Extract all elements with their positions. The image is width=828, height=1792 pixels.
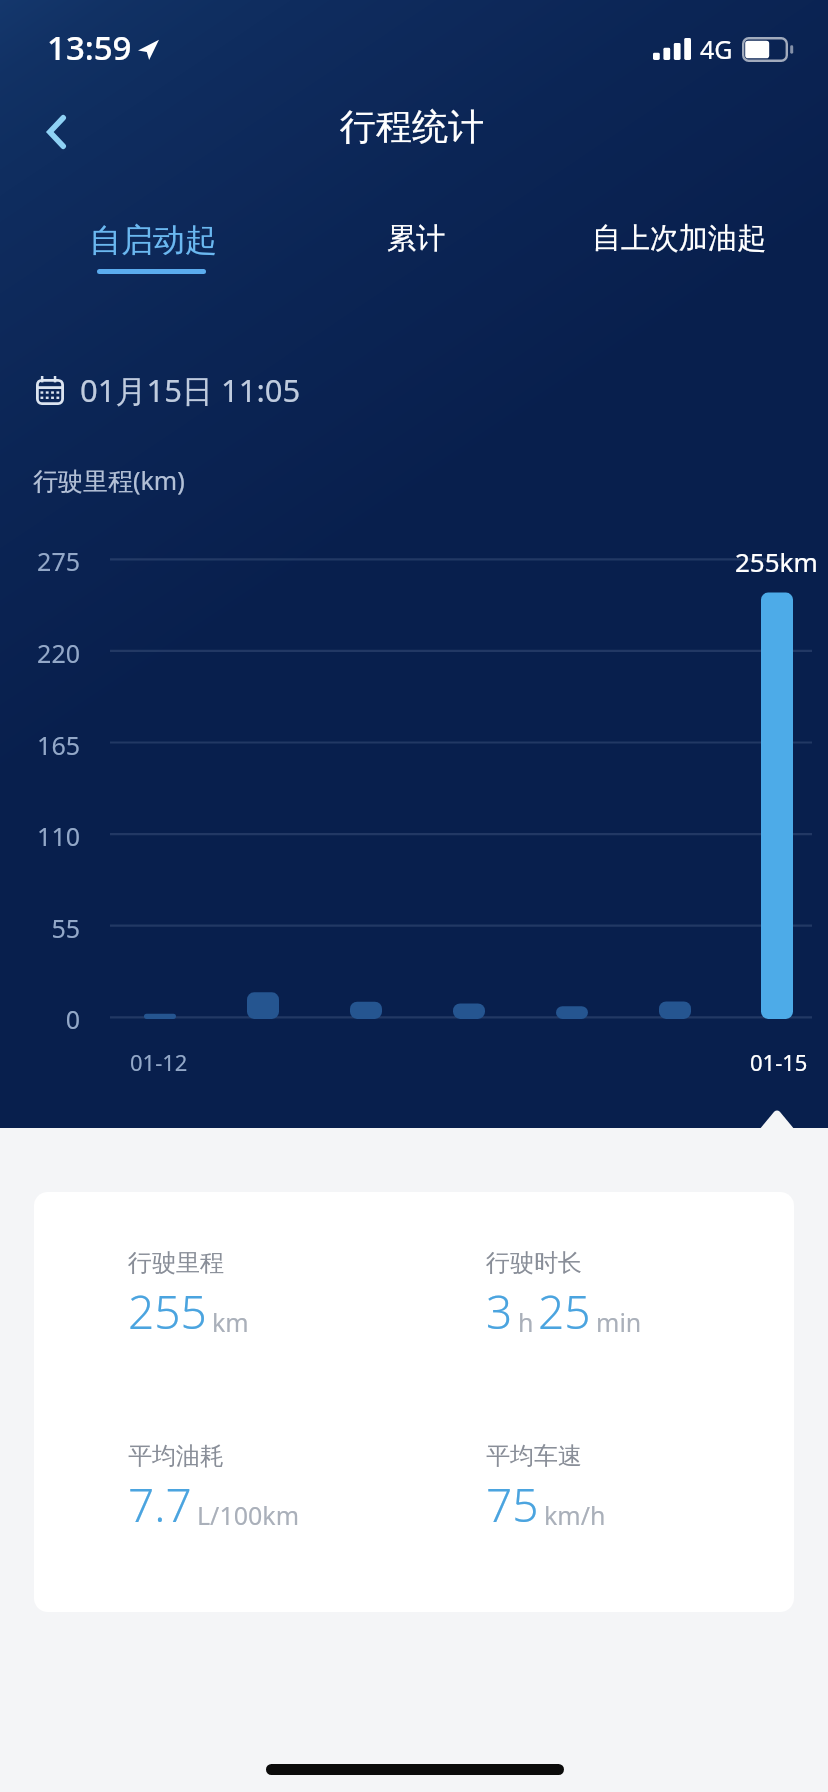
staticText: 行程统计 — [340, 104, 484, 149]
staticText: km/h — [544, 1498, 606, 1532]
staticText: 55 — [51, 911, 80, 945]
staticText: km — [212, 1305, 249, 1339]
staticText: 7.7 — [128, 1473, 192, 1536]
staticText: 平均车速 — [486, 1441, 582, 1471]
staticText: 255km — [735, 544, 818, 579]
button[interactable]: 累计 — [284, 220, 547, 300]
staticText: 行驶里程 — [128, 1248, 224, 1278]
staticText: 01-15 — [750, 1047, 808, 1077]
other: Battery — [742, 37, 794, 62]
button[interactable]: 行驶里程 — [34, 1192, 794, 1612]
staticText: min — [596, 1305, 642, 1339]
staticText: 自启动起 — [89, 220, 217, 260]
staticText: 自上次加油起 — [592, 220, 766, 257]
staticText: 110 — [37, 819, 80, 853]
other: Pick date — [36, 376, 64, 405]
staticText: h — [518, 1305, 534, 1339]
staticText: 行驶里程(km) — [33, 463, 185, 497]
button[interactable]: 自启动起 — [22, 220, 284, 300]
staticText: 01-12 — [130, 1047, 188, 1077]
staticText: 25 — [538, 1280, 591, 1343]
staticText: 01月15日 11:05 — [80, 369, 301, 411]
staticText: 3 — [486, 1280, 513, 1343]
other: Location active — [138, 39, 159, 60]
staticText: 275 — [37, 544, 80, 578]
other: Signal strength — [653, 38, 691, 60]
staticText: 165 — [37, 728, 80, 762]
staticText: 累计 — [387, 220, 445, 257]
staticText: 75 — [486, 1473, 539, 1536]
staticText: 13:59 — [47, 25, 132, 70]
staticText: 行驶时长 — [486, 1248, 582, 1278]
staticText: 平均油耗 — [128, 1441, 224, 1471]
button[interactable]: Back — [8, 84, 104, 180]
staticText: 255 — [128, 1280, 207, 1343]
button[interactable]: Pick date — [36, 369, 301, 411]
staticText: L/100km — [197, 1498, 300, 1532]
staticText: 220 — [37, 636, 80, 670]
staticText: 0 — [65, 1002, 80, 1036]
staticText: 4G — [700, 32, 733, 66]
button[interactable]: 自上次加油起 — [547, 220, 810, 300]
